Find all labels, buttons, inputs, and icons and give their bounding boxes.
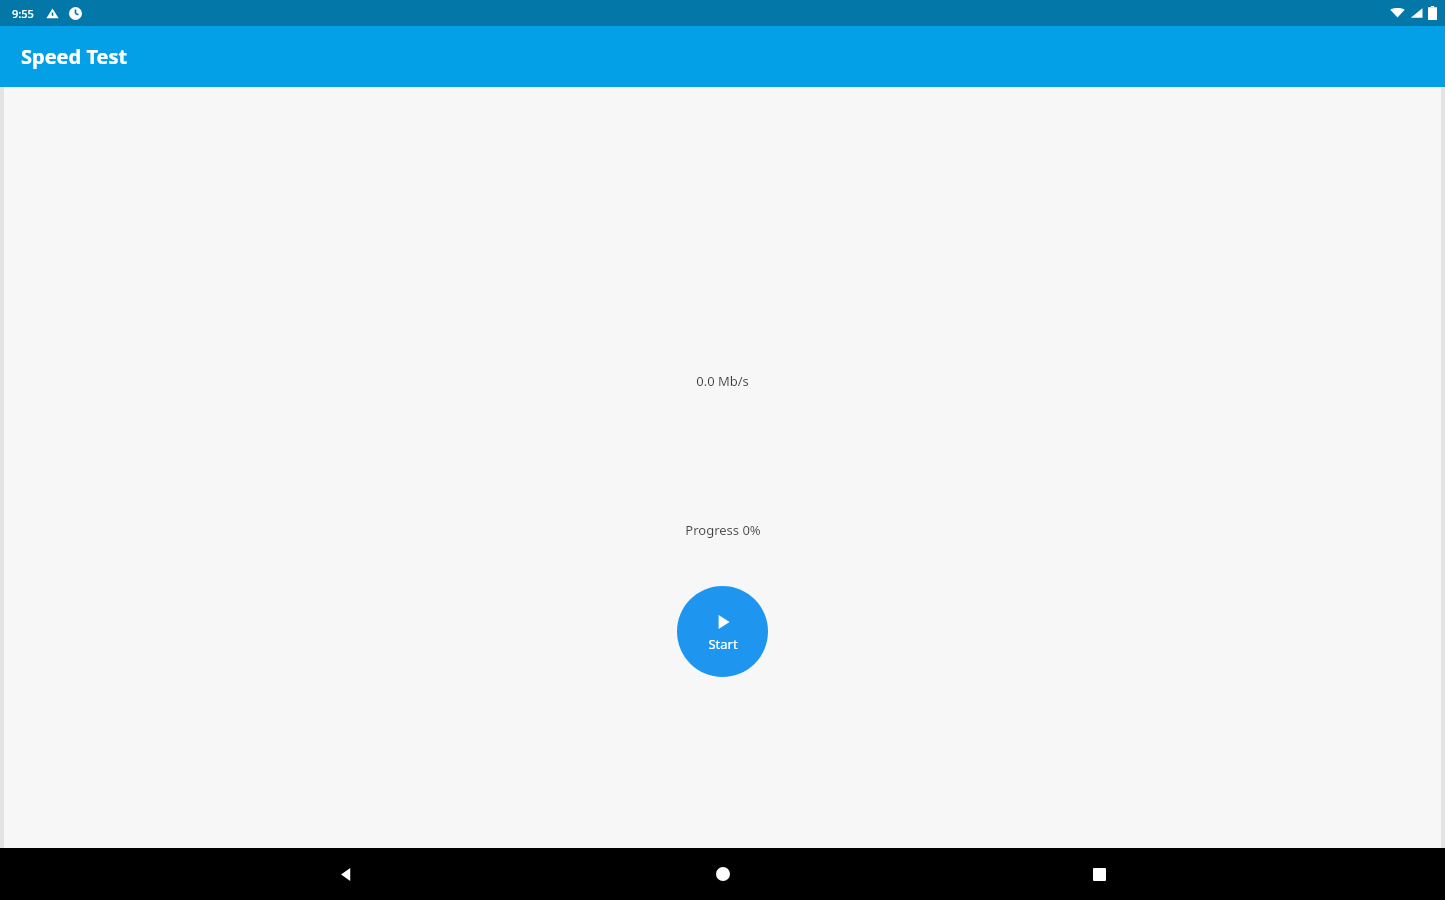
- button[interactable]: Back: [316, 848, 376, 900]
- staticText: Progress 0%: [685, 521, 761, 539]
- button[interactable]: Start: [677, 586, 768, 677]
- staticText: Start: [708, 635, 738, 653]
- button[interactable]: Recent apps: [1069, 848, 1129, 900]
- button[interactable]: Home: [693, 848, 753, 900]
- staticText: 0.0 Mb/s: [696, 372, 749, 390]
- staticText: Speed Test: [21, 43, 128, 70]
- staticText: 9:55: [12, 6, 34, 21]
